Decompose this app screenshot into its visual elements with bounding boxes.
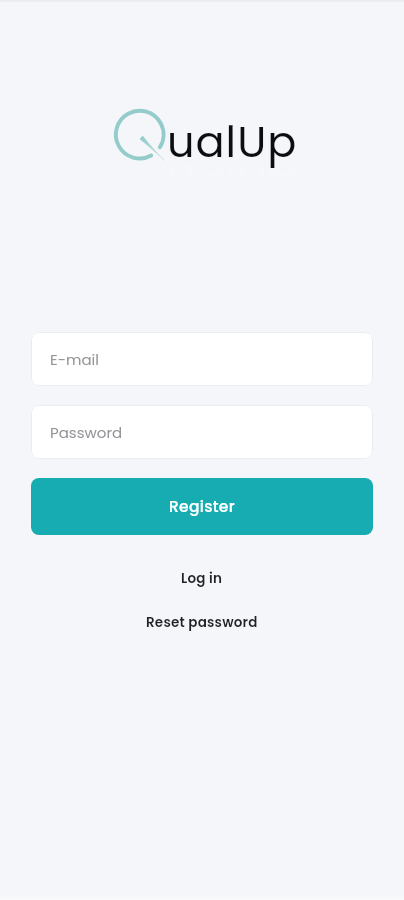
button[interactable]: Register [31, 478, 373, 535]
button[interactable]: Reset password [31, 609, 373, 635]
staticText: Log in [181, 569, 223, 588]
button[interactable]: Password [31, 405, 373, 459]
staticText: Password [50, 422, 123, 443]
button[interactable]: E-mail [31, 332, 373, 386]
staticText: ualUp [167, 157, 298, 186]
staticText: ualUp [167, 112, 298, 172]
staticText: E-mail [50, 349, 99, 370]
staticText: Register [169, 496, 235, 518]
staticText: Reset password [146, 613, 258, 632]
button[interactable]: Log in [31, 565, 373, 591]
